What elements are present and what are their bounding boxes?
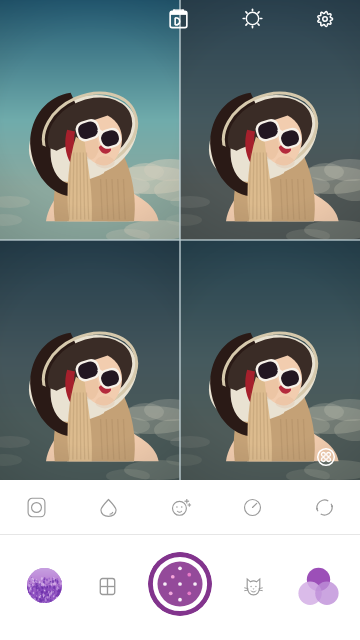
button[interactable]: Effects (296, 564, 341, 609)
button[interactable]: Change layout (313, 444, 339, 470)
button[interactable]: Beauty (144, 480, 216, 534)
button[interactable]: Brightness (232, 0, 272, 37)
button[interactable]: Camera (0, 480, 72, 534)
button[interactable]: Date stamp (158, 0, 198, 37)
button[interactable]: Grid layout (85, 564, 129, 608)
button[interactable]: Timer (216, 480, 288, 534)
button[interactable]: Filters (72, 480, 144, 534)
button[interactable]: Stickers (231, 564, 275, 608)
button[interactable]: Gallery (20, 561, 68, 609)
button[interactable]: Settings (305, 0, 345, 37)
button[interactable]: Shutter (148, 552, 212, 616)
button[interactable]: Switch camera (288, 480, 360, 534)
